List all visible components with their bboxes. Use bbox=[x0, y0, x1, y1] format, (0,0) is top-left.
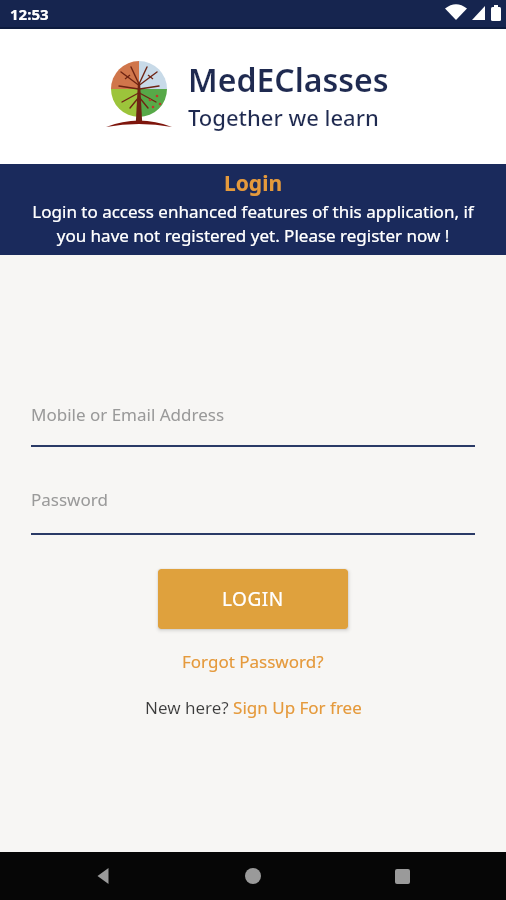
staticText: Mobile or Email Address bbox=[31, 403, 225, 426]
button[interactable]: Mobile or Email Address bbox=[31, 403, 475, 447]
staticText: Password bbox=[31, 488, 108, 511]
staticText: New here? Sign Up For free bbox=[145, 696, 362, 719]
button[interactable]: Password bbox=[31, 488, 475, 535]
staticText: 12:53 bbox=[10, 4, 49, 24]
staticText: Forgot Password? bbox=[182, 650, 324, 673]
button[interactable]: LOGIN bbox=[158, 569, 348, 629]
button[interactable] bbox=[92, 864, 116, 888]
staticText: LOGIN bbox=[222, 586, 284, 612]
staticText: Login bbox=[224, 169, 283, 198]
staticText: Together we learn bbox=[188, 102, 379, 132]
button[interactable] bbox=[241, 864, 265, 888]
button[interactable]: Forgot Password? bbox=[182, 650, 324, 673]
staticText: Login to access enhanced features of thi… bbox=[32, 200, 474, 247]
staticText: MedEClasses bbox=[188, 58, 389, 102]
button[interactable]: New here? Sign Up For free bbox=[145, 696, 362, 719]
button[interactable] bbox=[390, 864, 414, 888]
